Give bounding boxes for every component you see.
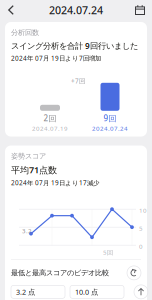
staticText: 10: [139, 206, 147, 215]
button[interactable]: Back: [0, 0, 22, 20]
staticText: 2024.07.24: [49, 3, 103, 17]
staticText: 5回: [103, 248, 113, 257]
staticText: 姿勢スコア: [11, 151, 46, 161]
staticText: 10.0 点: [75, 287, 98, 297]
button[interactable]: Reset comparison: [127, 266, 141, 280]
staticText: 2024.07.24: [92, 124, 128, 133]
staticText: 2024年 07月 19日より17減少: [11, 178, 99, 187]
button[interactable]: Calendar: [128, 0, 152, 20]
staticText: 最低と最高スコアのビデオ比較: [11, 268, 109, 277]
staticText: 2024年 07月 19日より7回増加: [11, 54, 101, 62]
staticText: 平均71点数: [11, 164, 57, 176]
staticText: スイング分析を合計 9回行いました: [11, 40, 138, 51]
staticText: 2回: [43, 113, 56, 124]
button[interactable]: Expand: [134, 285, 148, 299]
staticText: +7回: [71, 76, 85, 85]
staticText: 9回: [103, 113, 116, 124]
staticText: 3.2: [22, 227, 32, 235]
staticText: 5: [139, 224, 143, 233]
staticText: 分析回数: [11, 28, 39, 37]
staticText: 3.2 点: [16, 287, 35, 297]
staticText: 0: [139, 242, 143, 251]
staticText: 2024.07.19: [32, 124, 68, 133]
